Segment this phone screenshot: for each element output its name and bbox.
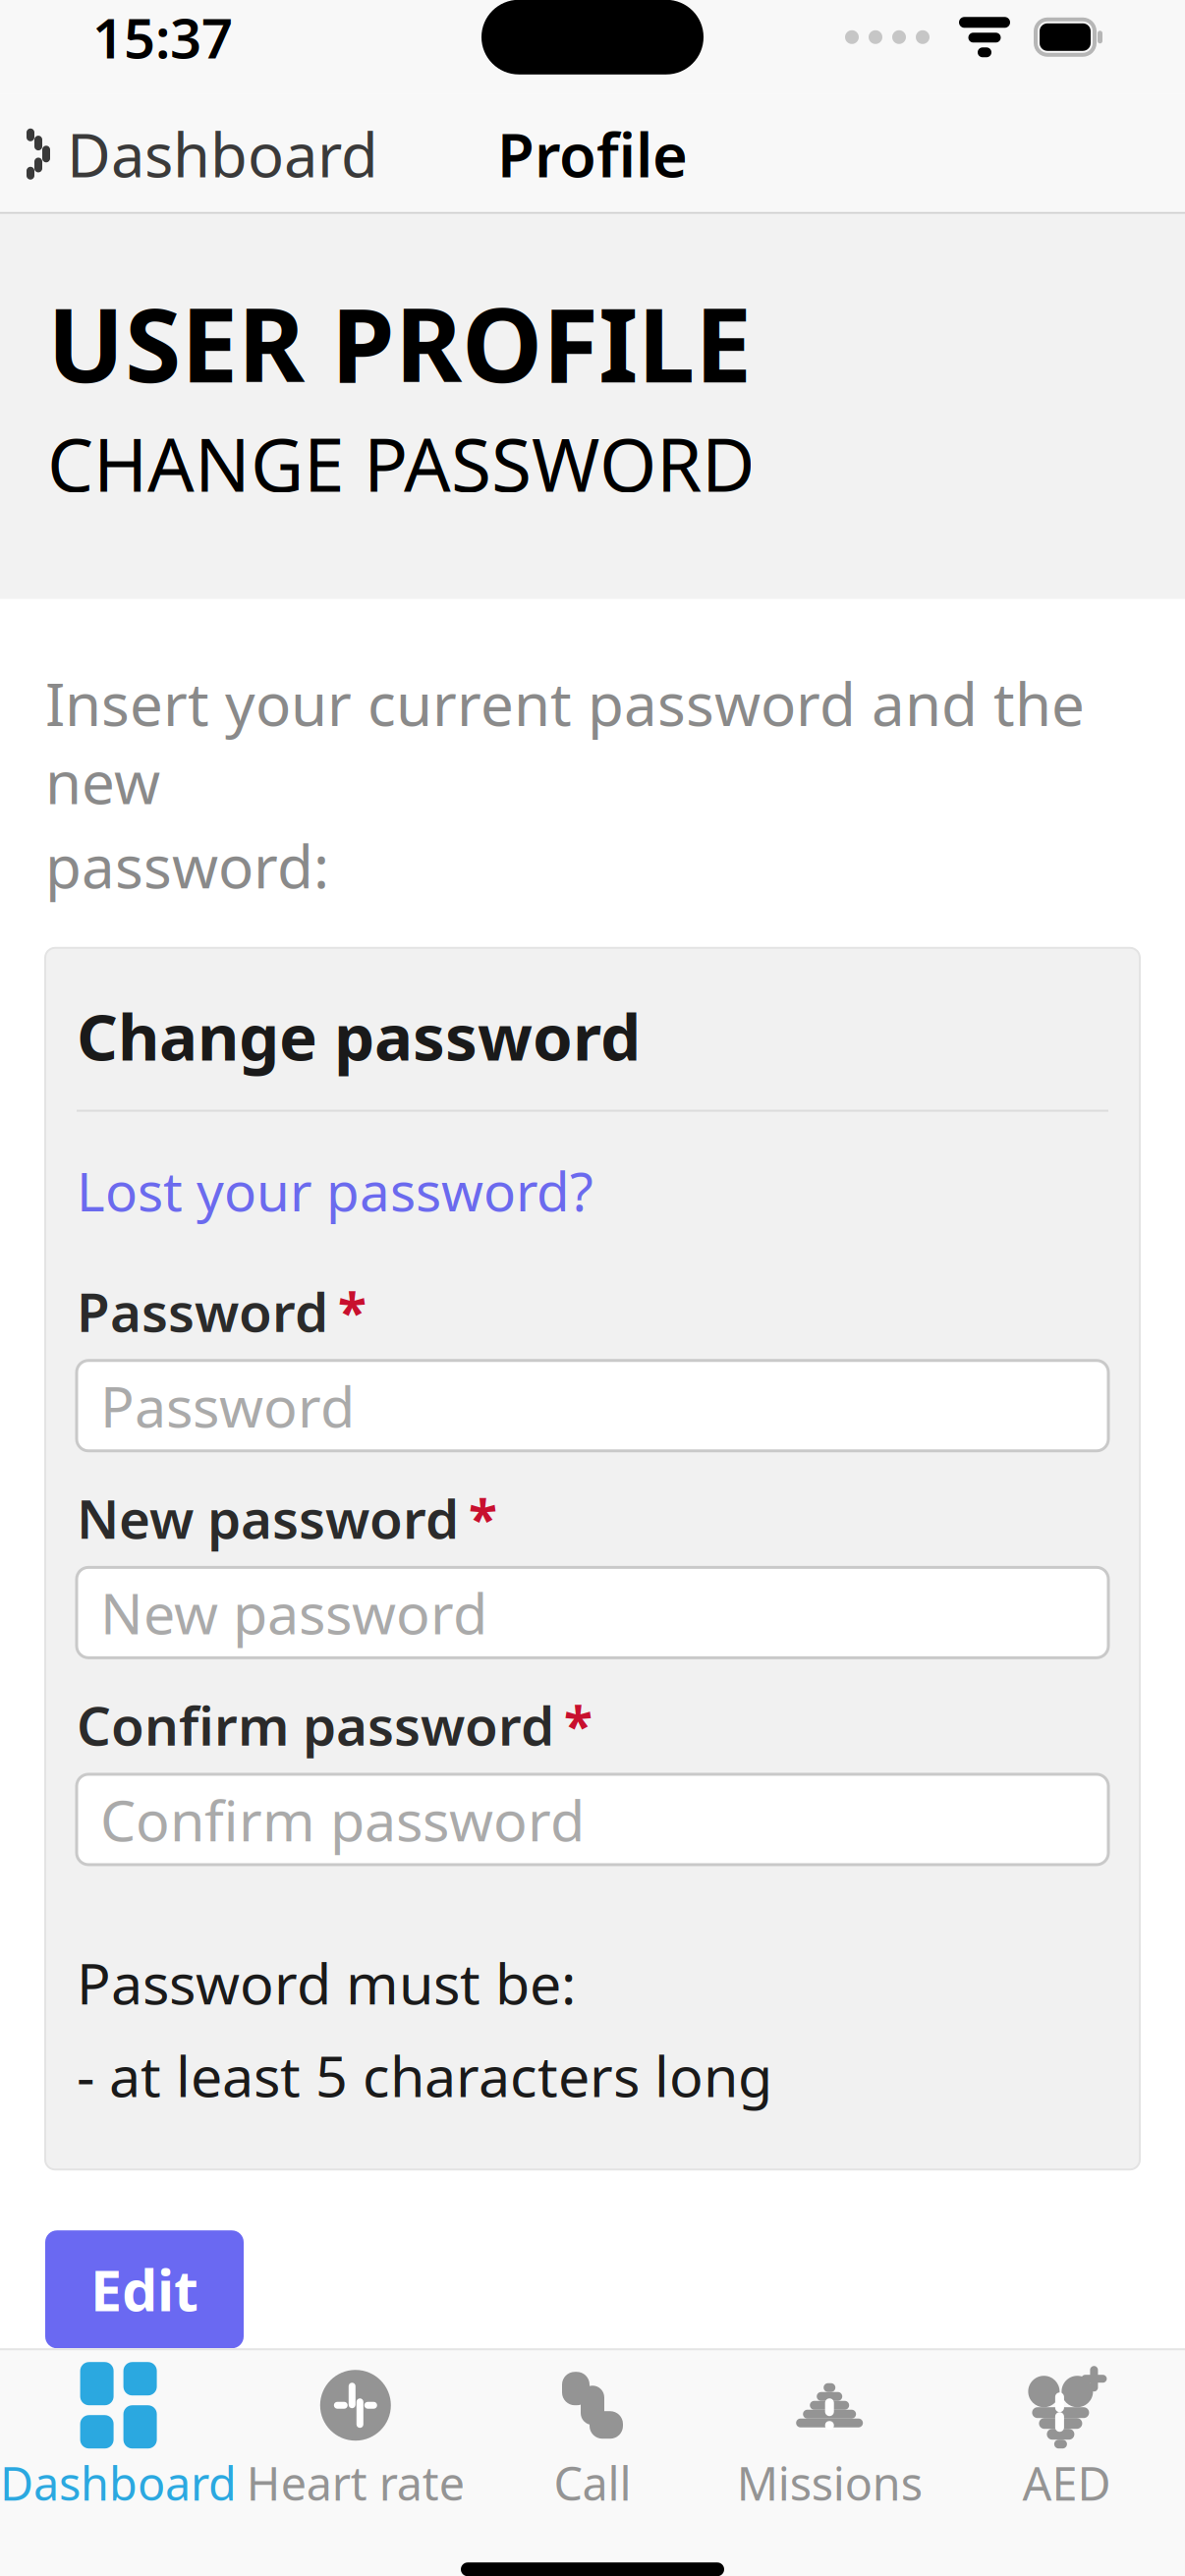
button[interactable]: AED [948,2350,1185,2513]
staticText: password: [45,826,329,905]
staticText: AED [1022,2452,1111,2513]
staticText: Heart rate [246,2452,465,2513]
staticText: Profile [497,114,688,194]
staticText: * [469,1483,497,1553]
button[interactable]: Dashboard [0,2350,237,2513]
staticText: Password must be: [77,1945,576,2020]
button[interactable]: Lost your password? [77,1143,593,1238]
button[interactable]: Call [474,2350,711,2513]
staticText: - at least 5 characters long [77,2038,772,2112]
staticText: Insert your current password and the new [45,664,1085,821]
staticText: New password [77,1482,459,1554]
staticText: Confirm password [77,1689,554,1761]
button[interactable]: Edit [45,2230,244,2348]
button[interactable]: New password [77,1567,1108,1658]
staticText: CHANGE PASSWORD [47,414,756,512]
staticText: 15:37 [92,1,233,74]
button[interactable]: Confirm password [77,1774,1108,1865]
button[interactable]: Missions [711,2350,948,2513]
staticText: Missions [737,2452,922,2513]
staticText: Change password [77,993,641,1078]
button[interactable]: Password [77,1361,1108,1451]
staticText: Password [100,1368,355,1443]
staticText: Dashboard [67,114,378,194]
staticText: New password [100,1575,487,1650]
staticText: USER PROFILE [47,275,752,411]
staticText: Lost your password? [77,1155,593,1226]
staticText: Dashboard [0,2452,237,2513]
staticText: * [338,1276,367,1346]
button[interactable]: Dashboard [0,94,378,214]
staticText: Edit [90,2252,198,2327]
staticText: Password [77,1275,328,1347]
staticText: * [564,1690,592,1760]
staticText: Call [554,2452,631,2513]
button[interactable]: Heart rate [237,2350,474,2513]
staticText: Confirm password [100,1782,585,1857]
